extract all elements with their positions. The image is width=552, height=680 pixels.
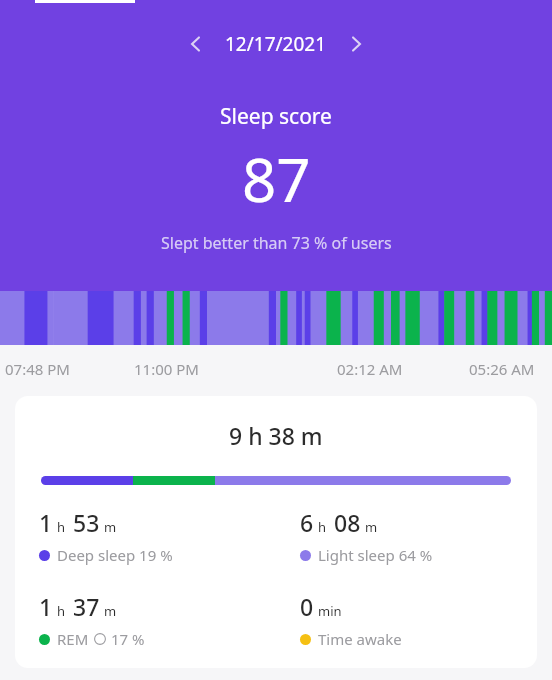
staticText: Light sleep 64 % xyxy=(318,545,433,565)
staticText: REM xyxy=(57,629,89,649)
other: REM info xyxy=(94,633,106,645)
staticText: Slept better than 73 % of users xyxy=(161,232,392,254)
button[interactable]: 1 xyxy=(15,591,276,649)
staticText: Deep sleep 19 % xyxy=(57,545,173,565)
staticText: 11:00 PM xyxy=(134,359,199,379)
staticText: 12/17/2021 xyxy=(225,31,327,57)
staticText: 07:48 PM xyxy=(5,359,70,379)
staticText: m xyxy=(104,518,117,536)
staticText: 53 xyxy=(73,507,100,538)
staticText: 6 xyxy=(300,507,314,538)
staticText: h xyxy=(57,602,66,620)
staticText: Time awake xyxy=(318,629,402,649)
button[interactable]: 1 xyxy=(15,507,276,565)
button[interactable]: 6 xyxy=(276,507,537,565)
staticText: h xyxy=(318,518,327,536)
button[interactable]: Next day xyxy=(340,27,374,61)
staticText: 1 xyxy=(39,591,53,622)
staticText: 05:26 AM xyxy=(469,359,535,379)
staticText: 87 xyxy=(242,138,311,220)
staticText: 0 xyxy=(300,591,314,622)
staticText: 9 h 38 m xyxy=(229,420,323,451)
button[interactable]: 12/17/2021 xyxy=(225,31,327,57)
staticText: 1 xyxy=(39,507,53,538)
staticText: 37 xyxy=(73,591,100,622)
staticText: m xyxy=(365,518,378,536)
staticText: 02:12 AM xyxy=(337,359,403,379)
button[interactable]: 9 h 38 m xyxy=(15,396,537,668)
staticText: 08 xyxy=(334,507,361,538)
staticText: m xyxy=(104,602,117,620)
staticText: h xyxy=(57,518,66,536)
button[interactable]: Previous day xyxy=(178,27,212,61)
staticText: 17 % xyxy=(111,629,145,649)
staticText: min xyxy=(318,602,342,620)
staticText: Sleep score xyxy=(220,102,332,131)
button[interactable]: 0 xyxy=(276,591,537,649)
